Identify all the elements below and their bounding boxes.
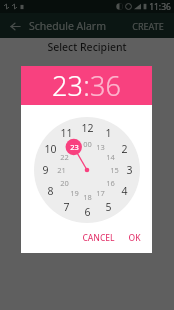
- staticText: 12: [81, 121, 94, 135]
- staticText: OK: [128, 232, 141, 244]
- staticText: 13: [96, 142, 105, 152]
- staticText: 22: [60, 152, 69, 162]
- staticText: 4: [121, 184, 128, 198]
- staticText: 7: [63, 200, 70, 214]
- staticText: Select Recipient: [47, 40, 127, 54]
- staticText: 18: [83, 192, 92, 202]
- staticText: Schedule Alarm: [29, 19, 106, 33]
- staticText: 14: [106, 152, 115, 162]
- staticText: 9: [42, 163, 49, 177]
- button[interactable]: CANCEL: [79, 229, 118, 247]
- staticText: 23: [70, 142, 79, 152]
- staticText: 23: [52, 67, 83, 104]
- staticText: 20: [60, 178, 69, 188]
- staticText: 36: [90, 67, 121, 104]
- staticText: 15: [110, 165, 119, 175]
- button[interactable]: 36: [90, 67, 121, 104]
- staticText: :: [83, 67, 90, 104]
- staticText: 10: [44, 142, 57, 156]
- staticText: 21: [57, 165, 66, 175]
- staticText: 19: [70, 188, 79, 198]
- staticText: CREATE: [132, 20, 164, 32]
- staticText: 00: [83, 139, 92, 149]
- staticText: 5: [105, 200, 112, 214]
- staticText: 8: [47, 184, 54, 198]
- staticText: 3: [126, 163, 133, 177]
- staticText: 17: [96, 188, 105, 198]
- staticText: 2: [121, 142, 128, 156]
- button[interactable]: Clock face: [34, 117, 140, 223]
- staticText: CANCEL: [82, 232, 115, 244]
- button[interactable]: OK: [125, 229, 144, 247]
- staticText: 11:36: [149, 1, 171, 13]
- staticText: 16: [106, 178, 115, 188]
- button[interactable]: Back: [6, 17, 24, 35]
- staticText: 1: [105, 126, 112, 140]
- button[interactable]: 23: [52, 67, 83, 104]
- button[interactable]: CREATE: [130, 15, 166, 37]
- staticText: 11: [60, 126, 73, 140]
- staticText: 6: [84, 205, 91, 219]
